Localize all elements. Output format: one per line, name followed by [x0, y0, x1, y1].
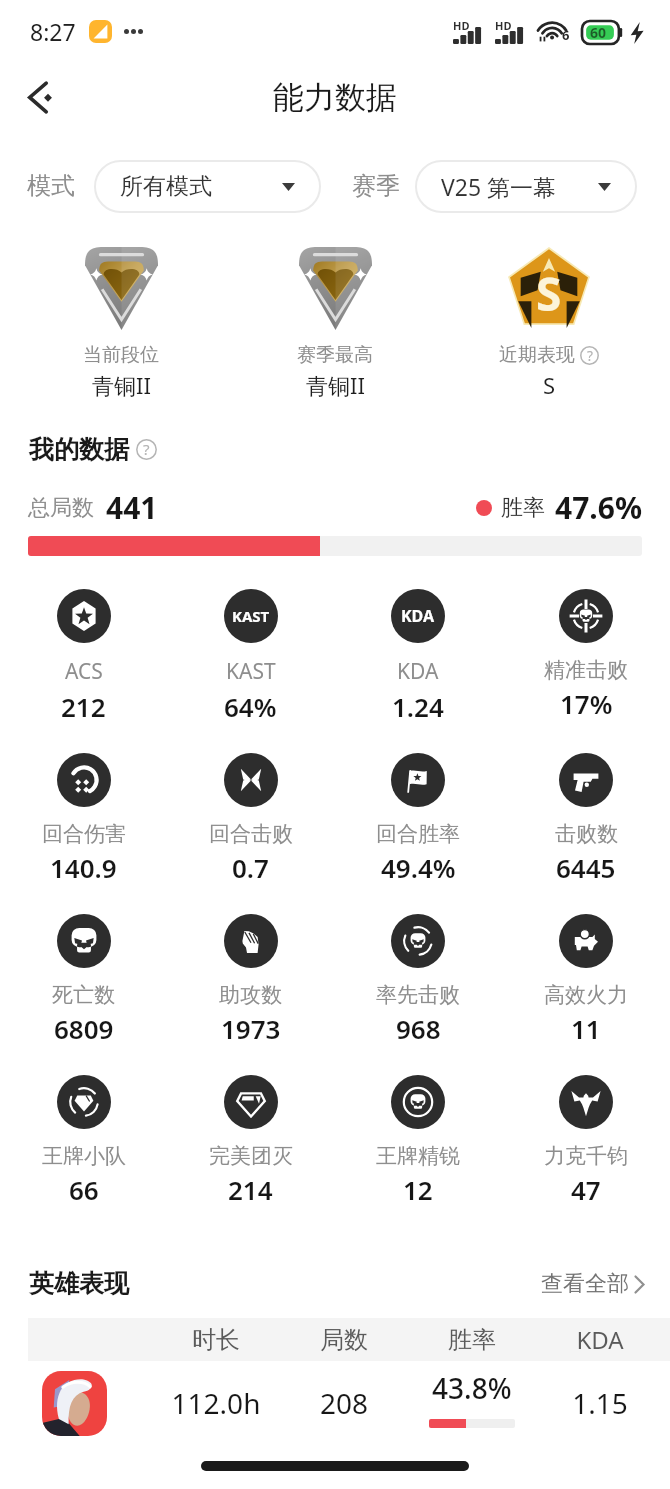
staticText: HD [495, 18, 512, 33]
staticText: 17% [560, 686, 613, 721]
staticText: 近期表现 [499, 343, 575, 367]
button[interactable]: 高效火力 [502, 914, 670, 1046]
staticText: 6 [562, 26, 570, 44]
staticText: 胜率 [501, 494, 545, 522]
staticText: KDA [536, 1323, 664, 1356]
staticText: 441 [106, 487, 158, 528]
button[interactable]: 回合胜率 [334, 753, 502, 885]
button[interactable]: 回合伤害 [0, 753, 167, 885]
button[interactable]: KDA [334, 589, 502, 724]
staticText: 回合胜率 [376, 821, 460, 847]
staticText: 1.15 [536, 1384, 664, 1422]
staticText: 43.8% [432, 1369, 512, 1407]
button[interactable]: 完美团灭 [167, 1075, 334, 1207]
staticText: V25 第一幕 [441, 171, 557, 202]
button[interactable]: 助攻数 [167, 914, 334, 1046]
button[interactable]: 112.0h [0, 1361, 670, 1445]
button[interactable]: ACS [0, 589, 167, 724]
staticText: 回合伤害 [42, 821, 126, 847]
staticText: 140.9 [50, 850, 117, 885]
button[interactable]: 击败数 [502, 753, 670, 885]
staticText: 英雄表现 [29, 1268, 129, 1299]
staticText: 我的数据 [29, 434, 129, 465]
staticText: 模式 [27, 171, 75, 201]
staticText: 8:27 [30, 16, 76, 47]
staticText: 0.7 [232, 850, 269, 885]
staticText: 精准击败 [544, 657, 628, 683]
staticText: KDA [401, 605, 435, 627]
staticText: 死亡数 [52, 982, 115, 1008]
staticText: KAST [232, 606, 270, 626]
staticText: 49.4% [381, 850, 456, 885]
staticText: 高效火力 [544, 982, 628, 1008]
staticText: 赛季 [352, 171, 400, 201]
button[interactable]: 王牌精锐 [334, 1075, 502, 1207]
staticText: 王牌小队 [42, 1143, 126, 1169]
button[interactable]: 力克千钧 [502, 1075, 670, 1207]
button[interactable]: KAST [167, 589, 334, 724]
staticText: 力克千钧 [544, 1143, 628, 1169]
staticText: ? [587, 346, 593, 365]
staticText: 208 [280, 1384, 408, 1422]
button[interactable]: 查看全部 [541, 1270, 645, 1298]
staticText: 赛季最高 [297, 343, 373, 367]
staticText: 66 [69, 1172, 99, 1207]
staticText: ? [143, 439, 150, 460]
staticText: 时长 [152, 1325, 280, 1355]
staticText: 214 [228, 1172, 273, 1207]
staticText: 查看全部 [541, 1270, 629, 1298]
staticText: 64% [224, 689, 277, 724]
button[interactable]: 回合击败 [167, 753, 334, 885]
staticText: 1.24 [392, 689, 444, 724]
staticText: 青铜II [92, 370, 151, 400]
staticText: 助攻数 [219, 982, 282, 1008]
staticText: 112.0h [152, 1384, 280, 1422]
staticText: 60 [590, 23, 607, 42]
button[interactable]: 所有模式 [94, 160, 321, 213]
staticText: S [543, 370, 556, 400]
button[interactable]: V25 第一幕 [415, 160, 637, 213]
staticText: 能力数据 [273, 78, 397, 117]
staticText: 11 [571, 1011, 601, 1046]
staticText: 所有模式 [120, 172, 212, 201]
button[interactable]: 率先击败 [334, 914, 502, 1046]
staticText: 968 [396, 1011, 441, 1046]
staticText: KAST [226, 657, 276, 686]
staticText: 212 [61, 689, 106, 724]
staticText: S [536, 262, 562, 325]
staticText: 6445 [556, 850, 616, 885]
staticText: 局数 [280, 1325, 408, 1355]
button[interactable]: 死亡数 [0, 914, 167, 1046]
staticText: 王牌精锐 [376, 1143, 460, 1169]
staticText: 胜率 [408, 1325, 536, 1355]
staticText: 总局数 [28, 494, 94, 522]
staticText: 完美团灭 [209, 1143, 293, 1169]
staticText: 6809 [54, 1011, 114, 1046]
staticText: 47.6% [555, 487, 642, 528]
staticText: 击败数 [555, 821, 618, 847]
button[interactable]: 精准击败 [502, 589, 670, 721]
staticText: 率先击败 [376, 982, 460, 1008]
staticText: KDA [397, 657, 439, 686]
staticText: 12 [403, 1172, 433, 1207]
staticText: 当前段位 [83, 343, 159, 367]
staticText: ACS [65, 657, 103, 686]
staticText: 47 [571, 1172, 601, 1207]
button[interactable]: 王牌小队 [0, 1075, 167, 1207]
button[interactable]: Back [10, 69, 68, 127]
staticText: HD [453, 18, 470, 33]
staticText: 青铜II [306, 370, 365, 400]
staticText: 回合击败 [209, 821, 293, 847]
staticText: 1973 [221, 1011, 281, 1046]
